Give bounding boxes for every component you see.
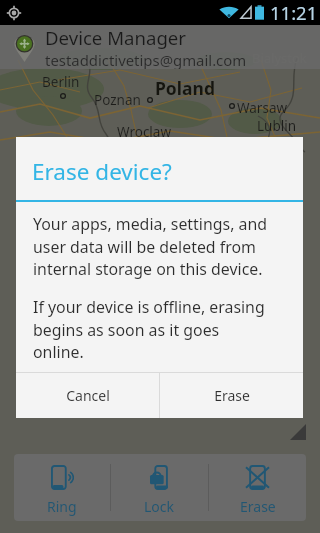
staticText: Lock bbox=[144, 497, 175, 516]
other: Location bbox=[6, 5, 22, 21]
button[interactable]: Erase bbox=[209, 454, 306, 521]
button[interactable]: Lock bbox=[111, 454, 208, 521]
staticText: 11:21 bbox=[270, 0, 318, 25]
staticText: testaddictivetips@gmail.com bbox=[45, 50, 247, 69]
staticText: Wroclaw bbox=[117, 123, 172, 141]
button[interactable]: Cancel bbox=[16, 373, 159, 418]
staticText: If your device is offline, erasing begin… bbox=[33, 296, 265, 362]
staticText: Lublin bbox=[257, 117, 297, 135]
button[interactable]: Ring bbox=[14, 454, 110, 521]
staticText: Warsaw bbox=[237, 99, 288, 117]
staticText: Device Manager bbox=[45, 25, 186, 50]
button[interactable]: Erase bbox=[160, 373, 303, 418]
staticText: Erase device? bbox=[32, 156, 172, 187]
staticText: Erase bbox=[240, 497, 276, 516]
staticText: Berlin bbox=[42, 73, 80, 91]
staticText: Your apps, media, settings, and user dat… bbox=[33, 213, 268, 279]
staticText: Ring bbox=[47, 497, 77, 516]
staticText: Cancel bbox=[66, 386, 110, 405]
staticText: Poznan bbox=[94, 91, 141, 109]
staticText: Erase bbox=[214, 386, 250, 405]
staticText: Poland bbox=[155, 76, 215, 100]
